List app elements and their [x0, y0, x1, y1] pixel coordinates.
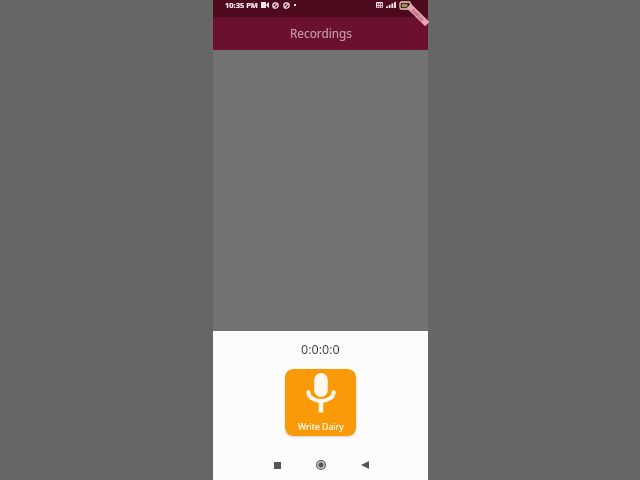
staticText: 10:35 PM	[225, 0, 258, 10]
staticText: Recordings	[290, 25, 352, 41]
staticText: 0:0:0:0	[301, 341, 340, 358]
staticText: DEBUG	[410, 7, 426, 23]
button[interactable]: Recents	[265, 453, 289, 477]
button[interactable]: Write Dairy	[285, 369, 356, 436]
button[interactable]: Back	[353, 453, 377, 477]
staticText: Write Dairy	[298, 421, 344, 433]
button[interactable]: Home	[309, 453, 333, 477]
